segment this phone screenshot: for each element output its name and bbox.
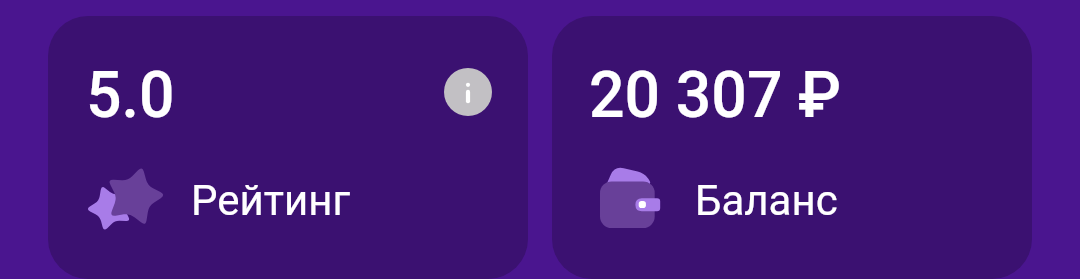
- staticText: 5.0: [86, 58, 175, 133]
- staticText: 20 307 ₽: [589, 58, 841, 133]
- staticText: Баланс: [695, 176, 838, 225]
- button[interactable]: Rating info: [444, 68, 492, 116]
- button[interactable]: 20 307 ₽: [552, 16, 1032, 279]
- button[interactable]: 5.0: [48, 16, 528, 279]
- staticText: Рейтинг: [191, 176, 351, 225]
